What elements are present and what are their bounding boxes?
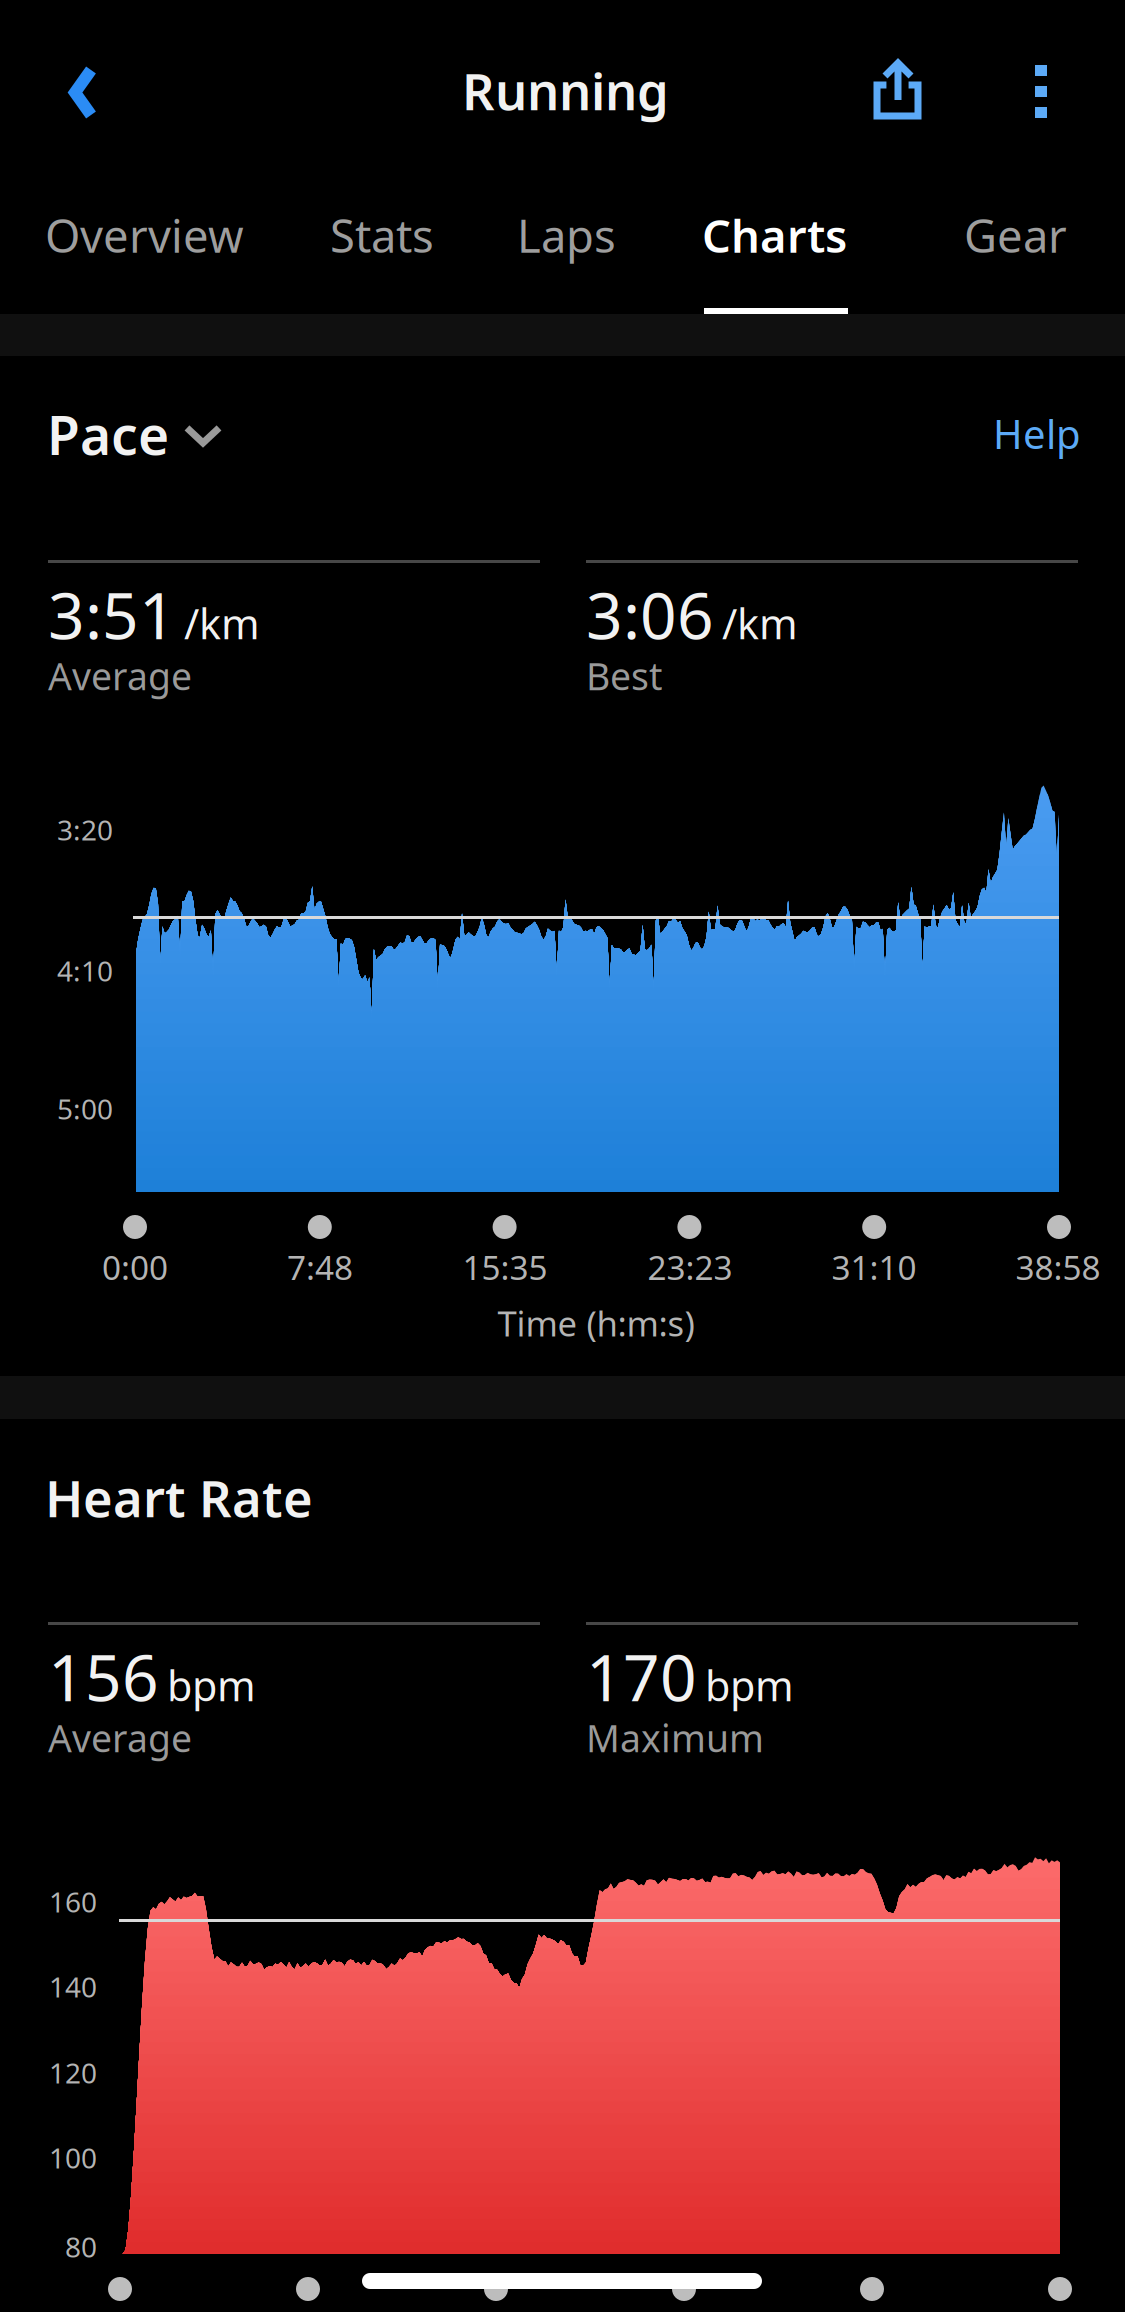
staticText: /km — [722, 596, 798, 651]
staticText: 3:20 — [57, 811, 113, 848]
staticText: Running — [462, 57, 669, 124]
staticText: Average — [48, 1713, 192, 1763]
staticText: 100 — [49, 2139, 97, 2176]
staticText: Gear — [964, 205, 1067, 265]
staticText: /km — [184, 596, 260, 651]
staticText: 23:23 — [647, 1245, 732, 1289]
staticText: Help — [993, 407, 1081, 460]
staticText: 15:35 — [462, 1245, 547, 1289]
staticText: Charts — [702, 205, 847, 265]
staticText: 3:06 — [586, 572, 714, 657]
staticText: 3:51 — [48, 572, 176, 657]
staticText: Stats — [330, 205, 434, 265]
button[interactable]: Gear — [948, 183, 1083, 287]
staticText: Pace — [47, 399, 169, 470]
staticText: Best — [586, 651, 662, 701]
button[interactable]: Help — [975, 389, 1099, 478]
button[interactable]: Share — [851, 33, 944, 145]
button[interactable]: Laps — [501, 183, 632, 287]
staticText: Time (h:m:s) — [497, 1300, 694, 1346]
button[interactable]: Back — [45, 40, 121, 145]
staticText: Laps — [517, 205, 616, 265]
staticText: 0:00 — [102, 1245, 168, 1289]
staticText: Maximum — [586, 1713, 764, 1763]
staticText: Average — [48, 651, 192, 701]
staticText: 5:00 — [57, 1090, 113, 1127]
button[interactable]: More options — [1005, 35, 1077, 148]
staticText: 80 — [65, 2228, 97, 2265]
staticText: bpm — [705, 1658, 794, 1713]
staticText: 120 — [49, 2054, 97, 2091]
button[interactable]: Charts — [686, 183, 863, 287]
staticText: bpm — [167, 1658, 256, 1713]
button[interactable]: Pace — [31, 383, 235, 486]
staticText: 170 — [586, 1634, 697, 1719]
staticText: Heart Rate — [45, 1464, 313, 1531]
staticText: 160 — [49, 1883, 97, 1920]
staticText: 140 — [49, 1968, 97, 2005]
button[interactable]: Overview — [29, 183, 260, 287]
staticText: 7:48 — [287, 1245, 353, 1289]
staticText: 156 — [48, 1634, 159, 1719]
staticText: Overview — [45, 205, 244, 265]
staticText: 38:58 — [1015, 1245, 1100, 1289]
staticText: 31:10 — [831, 1245, 916, 1289]
staticText: 4:10 — [57, 952, 113, 989]
button[interactable]: Stats — [314, 183, 450, 287]
